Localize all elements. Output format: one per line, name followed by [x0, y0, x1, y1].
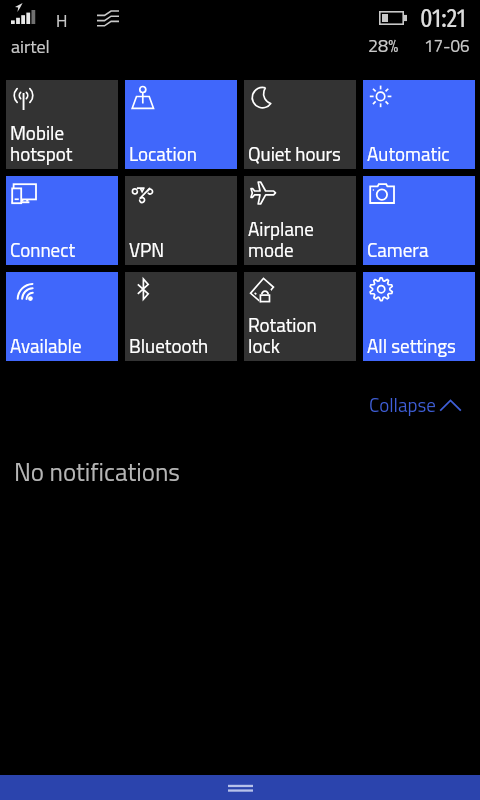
- staticText: Camera: [367, 235, 429, 264]
- staticText: Quiet hours: [248, 139, 341, 168]
- button[interactable]: Automatic: [363, 80, 475, 169]
- staticText: 01:21: [420, 3, 467, 34]
- button[interactable]: VPN: [125, 176, 237, 265]
- button[interactable]: Camera: [363, 176, 475, 265]
- staticText: 28%: [368, 32, 399, 59]
- staticText: Automatic: [367, 139, 450, 168]
- staticText: Location: [129, 139, 197, 168]
- button[interactable]: Location: [125, 80, 237, 169]
- button[interactable]: Collapse: [366, 386, 464, 423]
- staticText: VPN: [129, 235, 165, 264]
- button[interactable]: Mobile hotspot: [6, 80, 118, 169]
- staticText: Airplane mode: [248, 214, 314, 264]
- staticText: Collapse: [369, 390, 436, 419]
- staticText: Connect: [10, 235, 76, 264]
- staticText: Available: [10, 331, 82, 360]
- staticText: Rotation lock: [248, 310, 317, 360]
- staticText: H: [56, 8, 68, 34]
- button[interactable]: Bluetooth: [125, 272, 237, 361]
- staticText: No notifications: [14, 453, 180, 491]
- button[interactable]: Connect: [6, 176, 118, 265]
- button[interactable]: Airplane mode: [244, 176, 356, 265]
- staticText: Bluetooth: [129, 331, 209, 360]
- staticText: All settings: [367, 331, 456, 360]
- staticText: airtel: [11, 33, 50, 60]
- button[interactable]: Available: [6, 272, 118, 361]
- button[interactable]: Quiet hours: [244, 80, 356, 169]
- staticText: 17-06: [424, 33, 470, 59]
- button[interactable]: All settings: [363, 272, 475, 361]
- button[interactable]: Rotation lock: [244, 272, 356, 361]
- staticText: Mobile hotspot: [10, 118, 73, 168]
- button[interactable]: More: [204, 775, 276, 800]
